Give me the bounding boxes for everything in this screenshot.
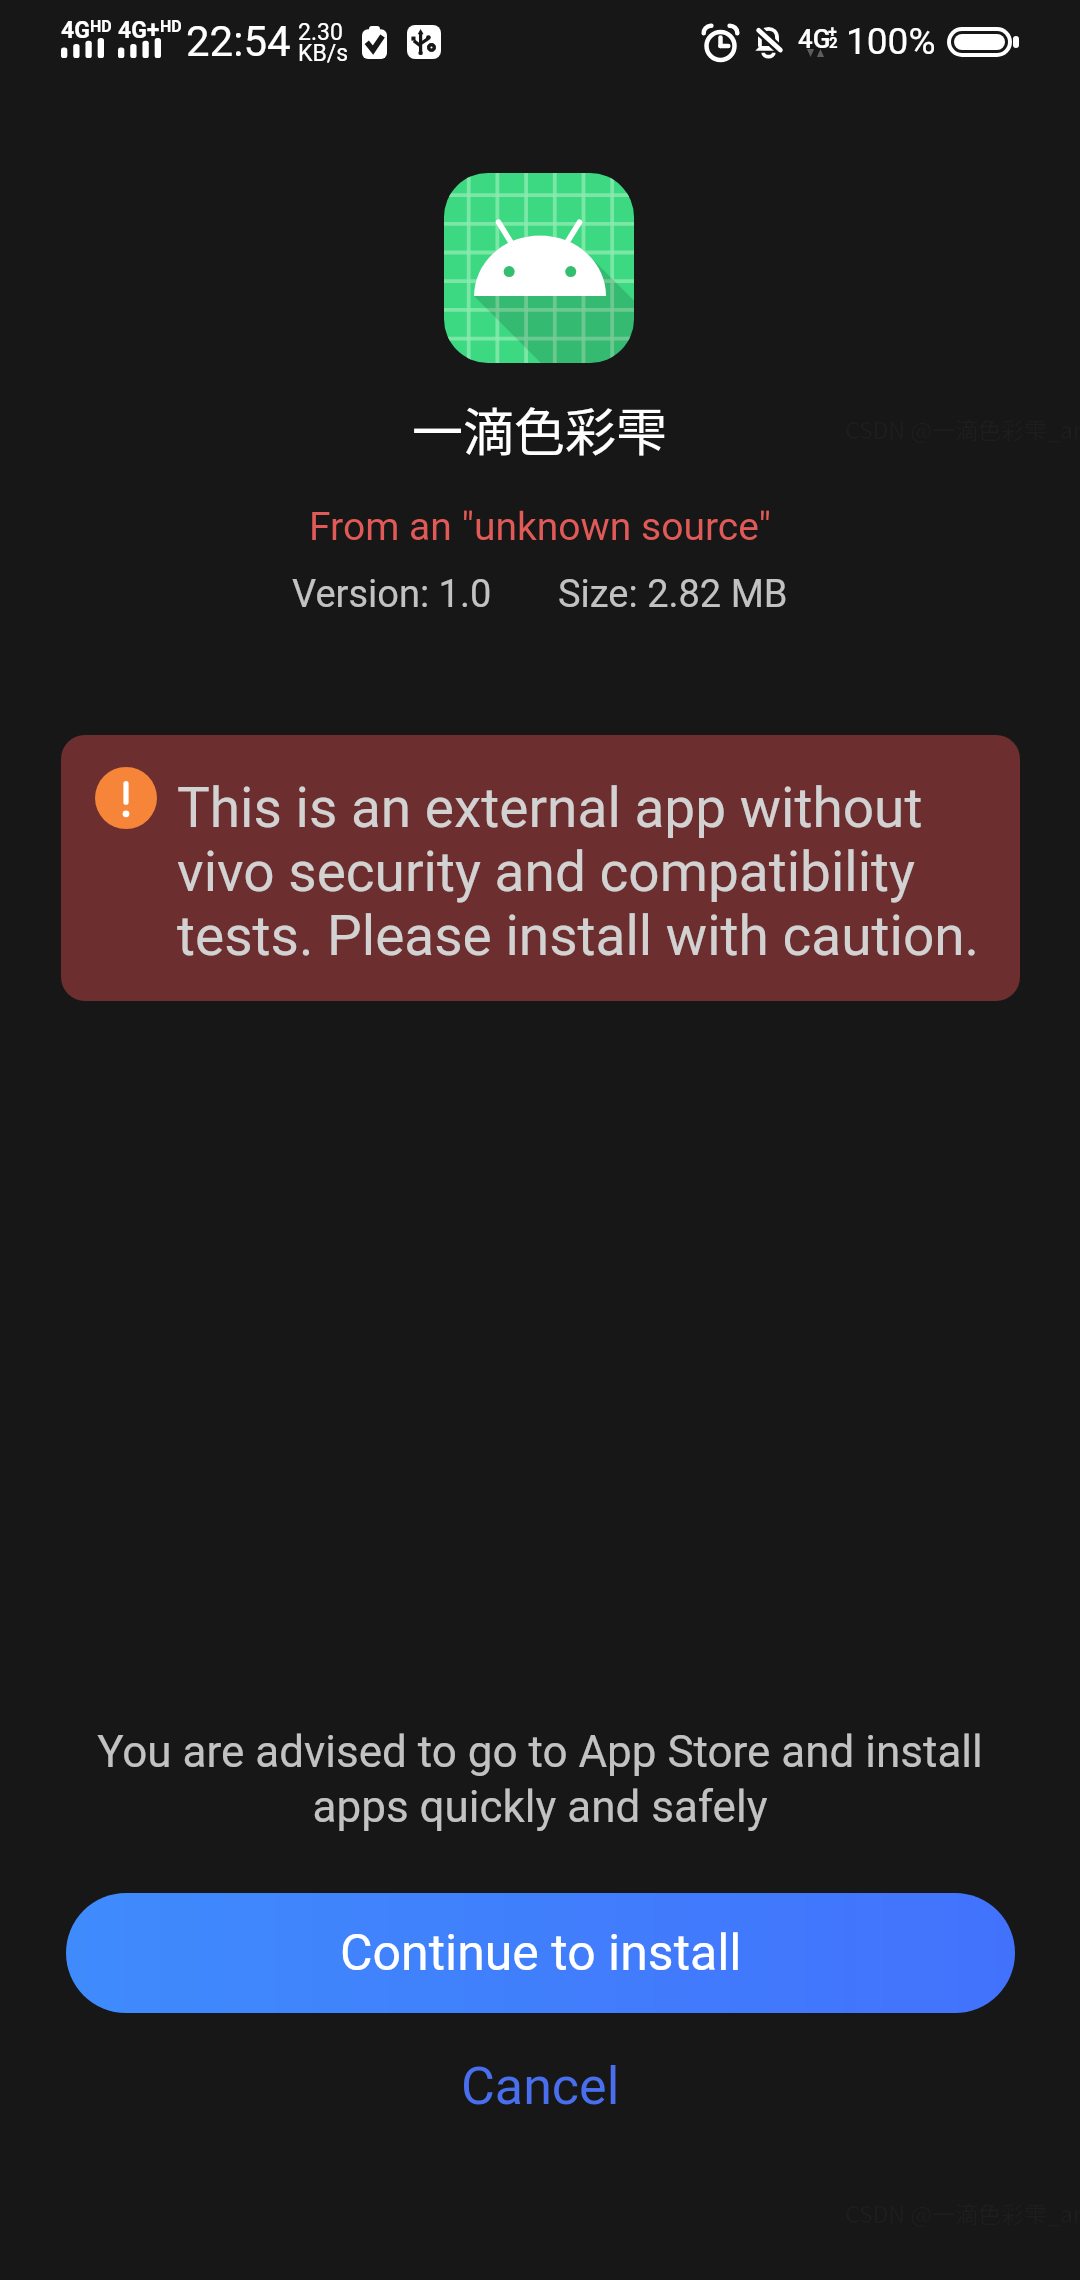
staticText: Cancel [461, 2056, 620, 2117]
other: USB debugging [407, 25, 441, 59]
staticText: 4G [798, 24, 831, 54]
staticText: 22:54 [186, 17, 291, 66]
staticText: Version: 1.0 [292, 572, 492, 617]
staticText: 2 [829, 34, 838, 52]
staticText: From an "unknown source" [309, 504, 772, 550]
button[interactable]: Cancel [0, 2030, 1080, 2142]
staticText: 4G [61, 17, 90, 44]
staticText: HD [160, 17, 182, 36]
staticText: 100% [846, 20, 936, 63]
staticText: + [828, 22, 837, 41]
staticText: 4G+ [118, 17, 160, 44]
other: Alarm [703, 25, 738, 60]
staticText: Continue to install [340, 1924, 742, 1983]
staticText: You are advised to go to App Store and i… [0, 1726, 1080, 1832]
staticText: 2.30 [298, 19, 343, 46]
staticText: KB/s [298, 40, 349, 67]
staticText: 一滴色彩雫 [412, 392, 668, 466]
button[interactable]: Continue to install [66, 1893, 1015, 2013]
staticText: Size: 2.82 MB [558, 572, 788, 617]
staticText: HD [90, 17, 112, 36]
staticText: This is an external app without vivo sec… [177, 776, 980, 968]
other: Notifications muted [752, 25, 785, 58]
